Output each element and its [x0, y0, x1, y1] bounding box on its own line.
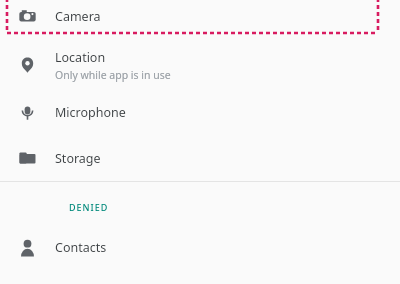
other: Location permission — [0, 42, 55, 89]
staticText: Contacts — [55, 239, 107, 256]
staticText: Storage — [55, 150, 101, 167]
staticText: DENIED — [69, 201, 109, 213]
button[interactable]: Location permission — [0, 42, 400, 89]
staticText: Only while app is in use — [55, 68, 171, 82]
staticText: Microphone — [55, 104, 126, 121]
button[interactable]: Storage permission — [0, 136, 400, 181]
other: Microphone permission — [0, 89, 55, 136]
staticText: Location — [55, 49, 106, 66]
other: Contacts permission — [0, 224, 55, 271]
button[interactable]: Camera permission — [0, 0, 400, 33]
other: Storage permission — [0, 136, 55, 181]
button[interactable]: Microphone permission — [0, 89, 400, 136]
staticText: Camera — [55, 8, 101, 25]
other: Camera permission — [0, 0, 55, 33]
button[interactable]: Contacts permission — [0, 224, 400, 271]
